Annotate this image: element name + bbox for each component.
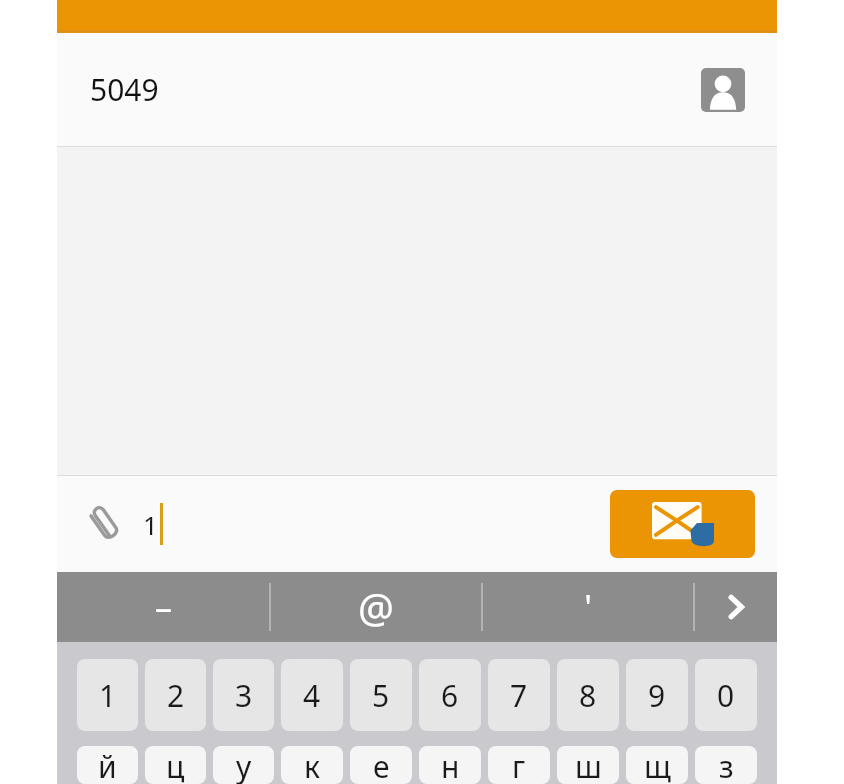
button[interactable]: – <box>57 572 269 642</box>
button[interactable]: н <box>419 746 481 784</box>
button[interactable]: 6 <box>419 659 481 731</box>
staticText: 2 <box>167 675 185 716</box>
staticText: ш <box>575 746 602 784</box>
staticText: у <box>236 746 252 784</box>
staticText: @ <box>358 580 394 634</box>
button[interactable]: й <box>77 746 138 784</box>
button[interactable]: Attach file <box>79 498 131 550</box>
staticText: й <box>98 746 117 784</box>
staticText: е <box>373 746 390 784</box>
staticText: ц <box>166 746 185 784</box>
button[interactable]: г <box>488 746 550 784</box>
button[interactable]: 1 <box>77 659 138 731</box>
button[interactable]: к <box>281 746 343 784</box>
staticText: – <box>155 584 172 630</box>
staticText: 0 <box>717 675 735 716</box>
button[interactable]: у <box>213 746 274 784</box>
button[interactable]: 1 <box>131 476 610 572</box>
button[interactable]: 5 <box>350 659 412 731</box>
button[interactable]: 2 <box>145 659 206 731</box>
button[interactable]: 4 <box>281 659 343 731</box>
button[interactable]: Send message <box>610 490 755 558</box>
staticText: щ <box>644 746 671 784</box>
staticText: н <box>441 746 460 784</box>
button[interactable]: 7 <box>488 659 550 731</box>
staticText: ' <box>584 584 592 630</box>
button[interactable]: 3 <box>213 659 274 731</box>
staticText: 9 <box>648 675 666 716</box>
staticText: 4 <box>303 675 321 716</box>
staticText: 7 <box>510 675 528 716</box>
staticText: г <box>512 746 526 784</box>
button[interactable]: 8 <box>557 659 619 731</box>
button[interactable]: Contact avatar <box>701 68 745 112</box>
staticText: 5 <box>372 675 390 716</box>
button[interactable]: @ <box>271 572 481 642</box>
staticText: 1 <box>143 507 158 542</box>
button[interactable]: 9 <box>626 659 688 731</box>
staticText: 8 <box>579 675 597 716</box>
button[interactable]: ц <box>145 746 206 784</box>
button[interactable]: ' <box>483 572 693 642</box>
button[interactable]: е <box>350 746 412 784</box>
button[interactable]: ш <box>557 746 619 784</box>
staticText: 5049 <box>90 69 159 110</box>
staticText: 1 <box>99 675 117 716</box>
button[interactable]: More suggestions <box>695 572 777 642</box>
staticText: з <box>719 746 734 784</box>
button[interactable]: з <box>695 746 757 784</box>
staticText: 6 <box>441 675 459 716</box>
button[interactable]: 0 <box>695 659 757 731</box>
staticText: 3 <box>235 675 253 716</box>
staticText: к <box>304 746 320 784</box>
button[interactable]: щ <box>626 746 688 784</box>
